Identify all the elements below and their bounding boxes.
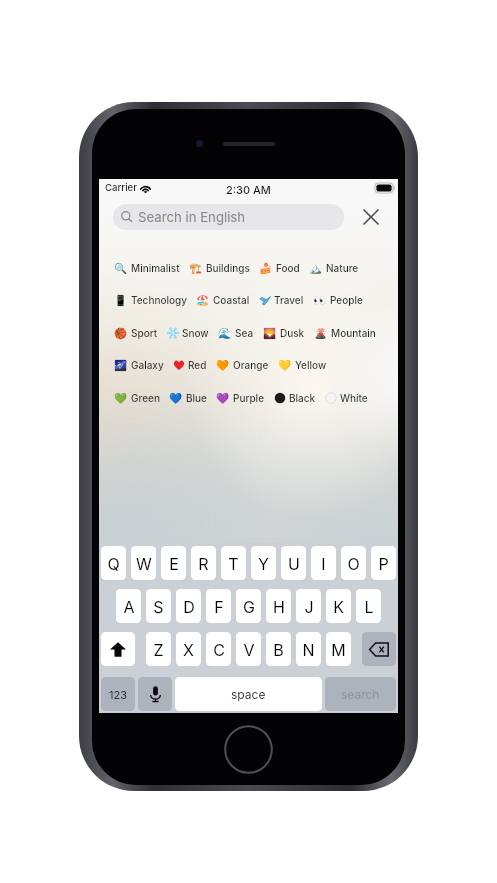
- staticText: 🧡: [216, 359, 230, 371]
- staticText: Black: [289, 392, 316, 404]
- staticText: Food: [276, 262, 300, 274]
- staticText: C: [213, 640, 225, 659]
- button[interactable]: Snow: [167, 327, 218, 339]
- staticText: Galaxy: [131, 359, 164, 371]
- staticText: D: [183, 597, 195, 616]
- staticText: O: [347, 554, 360, 573]
- button[interactable]: White: [325, 392, 377, 404]
- button[interactable]: Search in English: [113, 204, 344, 230]
- staticText: Dusk: [280, 327, 305, 339]
- staticText: E: [169, 554, 179, 573]
- staticText: Purple: [233, 392, 265, 404]
- button[interactable]: G: [236, 589, 261, 623]
- button[interactable]: 🏖️: [196, 294, 259, 306]
- staticText: A: [123, 597, 135, 616]
- button[interactable]: C: [206, 632, 231, 666]
- button[interactable]: U: [281, 546, 306, 580]
- staticText: Blue: [186, 392, 207, 404]
- staticText: T: [228, 554, 239, 573]
- button[interactable]: K: [326, 589, 351, 623]
- button[interactable]: O: [341, 546, 366, 580]
- button[interactable]: D: [176, 589, 201, 623]
- button[interactable]: T: [221, 546, 246, 580]
- button[interactable]: I: [311, 546, 336, 580]
- staticText: G: [243, 597, 255, 616]
- staticText: V: [243, 640, 255, 659]
- button[interactable]: 🧡: [216, 359, 278, 371]
- button[interactable]: W: [131, 546, 156, 580]
- staticText: 👀: [313, 294, 327, 306]
- staticText: M: [331, 640, 346, 659]
- staticText: 💜: [216, 392, 230, 404]
- staticText: 💛: [278, 359, 292, 371]
- button[interactable]: Dictation: [138, 677, 172, 711]
- button[interactable]: J: [296, 589, 321, 623]
- staticText: Green: [131, 392, 160, 404]
- button[interactable]: P: [371, 546, 396, 580]
- staticText: 🌌: [114, 359, 128, 371]
- staticText: L: [364, 597, 374, 616]
- button[interactable]: 🌊: [218, 327, 263, 339]
- staticText: Snow: [182, 327, 209, 339]
- staticText: People: [330, 294, 363, 306]
- button[interactable]: M: [326, 632, 351, 666]
- button[interactable]: 123: [101, 677, 135, 711]
- button[interactable]: X: [176, 632, 201, 666]
- staticText: B: [273, 640, 284, 659]
- button[interactable]: 🏗️: [189, 262, 259, 274]
- button[interactable]: 💙: [169, 392, 216, 404]
- button[interactable]: 🏔️: [309, 262, 368, 274]
- button[interactable]: Black: [274, 392, 325, 404]
- button[interactable]: Backspace: [362, 632, 396, 666]
- staticText: 📱: [114, 294, 128, 306]
- button[interactable]: Y: [251, 546, 276, 580]
- staticText: Mountain: [331, 327, 376, 339]
- button[interactable]: space: [175, 677, 322, 711]
- staticText: X: [183, 640, 194, 659]
- button[interactable]: 📱: [114, 294, 196, 306]
- staticText: 🏗️: [189, 262, 203, 274]
- staticText: W: [136, 554, 152, 573]
- button[interactable]: Clear search: [349, 203, 393, 231]
- staticText: 💙: [169, 392, 183, 404]
- button[interactable]: 💚: [114, 392, 169, 404]
- button[interactable]: 🏀: [114, 327, 167, 339]
- button[interactable]: Q: [101, 546, 126, 580]
- button[interactable]: search: [325, 677, 396, 711]
- button[interactable]: L: [356, 589, 381, 623]
- staticText: Technology: [131, 294, 187, 306]
- button[interactable]: E: [161, 546, 186, 580]
- staticText: Travel: [274, 294, 304, 306]
- button[interactable]: 🌄: [263, 327, 314, 339]
- button[interactable]: 🌌: [114, 359, 173, 371]
- button[interactable]: 💜: [216, 392, 274, 404]
- button[interactable]: 🍰: [259, 262, 309, 274]
- staticText: S: [153, 597, 164, 616]
- button[interactable]: Z: [146, 632, 171, 666]
- button[interactable]: N: [296, 632, 321, 666]
- staticText: Buildings: [206, 262, 250, 274]
- button[interactable]: S: [146, 589, 171, 623]
- staticText: Red: [188, 359, 207, 371]
- staticText: Search in English: [138, 209, 246, 225]
- staticText: Sport: [131, 327, 158, 339]
- button[interactable]: Shift: [101, 632, 135, 666]
- button[interactable]: 🔍: [114, 262, 189, 274]
- staticText: U: [288, 554, 300, 573]
- staticText: 🏖️: [196, 294, 210, 306]
- button[interactable]: R: [191, 546, 216, 580]
- button[interactable]: H: [266, 589, 291, 623]
- staticText: H: [273, 597, 285, 616]
- staticText: 💚: [114, 392, 128, 404]
- staticText: 123: [109, 688, 127, 701]
- staticText: N: [302, 640, 315, 659]
- button[interactable]: Red: [173, 359, 216, 371]
- button[interactable]: F: [206, 589, 231, 623]
- button[interactable]: 🌋: [314, 327, 385, 339]
- button[interactable]: A: [116, 589, 141, 623]
- button[interactable]: B: [266, 632, 291, 666]
- button[interactable]: 💛: [278, 359, 336, 371]
- button[interactable]: V: [236, 632, 261, 666]
- button[interactable]: Travel: [259, 294, 313, 306]
- button[interactable]: 👀: [313, 294, 372, 306]
